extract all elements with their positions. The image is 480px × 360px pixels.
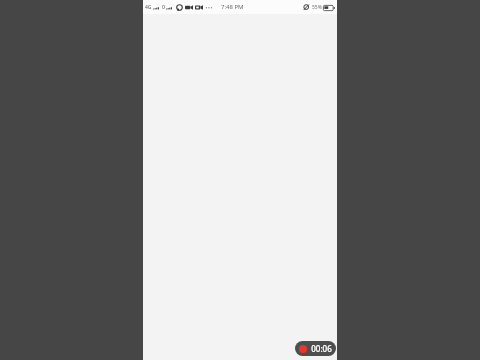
staticText: 4G (145, 4, 152, 11)
staticText: 55% (312, 4, 322, 11)
staticText: 0 (162, 4, 165, 11)
button[interactable]: Screen recording, 00:06 (295, 341, 336, 356)
staticText: 00:06 (311, 343, 332, 354)
staticText: 7:48 PM (221, 3, 244, 11)
